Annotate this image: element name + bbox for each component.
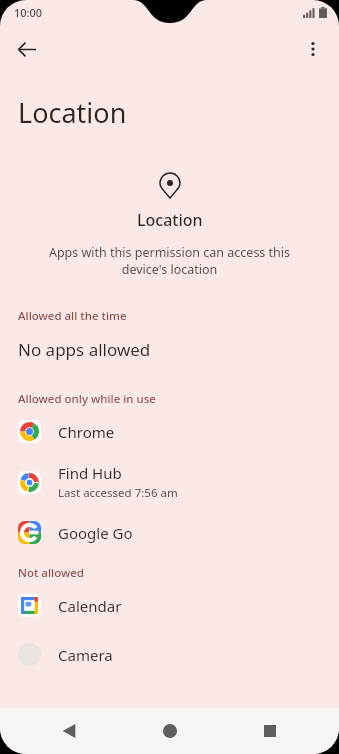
staticText: Calendar	[58, 596, 122, 616]
staticText: Location	[137, 209, 203, 231]
button[interactable]: Home	[153, 714, 187, 748]
button[interactable]: Back	[52, 714, 86, 748]
staticText: Location	[18, 94, 127, 131]
staticText: Find Hub	[58, 463, 122, 483]
staticText: Apps with this permission can access thi…	[26, 244, 313, 278]
staticText: Allowed all the time	[18, 308, 127, 324]
staticText: Google Go	[58, 523, 133, 543]
button[interactable]: Calendar	[0, 581, 339, 630]
button[interactable]: Recent apps	[253, 714, 287, 748]
button[interactable]: Back	[6, 29, 46, 69]
staticText: Camera	[58, 645, 113, 665]
button[interactable]: Google Go	[0, 508, 339, 557]
button[interactable]: Camera	[0, 630, 339, 679]
staticText: Last accessed 7:56 am	[58, 485, 178, 501]
staticText: Not allowed	[18, 565, 84, 581]
staticText: Chrome	[58, 422, 115, 442]
button[interactable]: Chrome	[0, 407, 339, 456]
staticText: No apps allowed	[18, 338, 151, 361]
staticText: Allowed only while in use	[18, 391, 156, 407]
button[interactable]: More options	[293, 29, 333, 69]
button[interactable]: Find Hub	[0, 456, 339, 508]
staticText: 10:00	[14, 5, 43, 20]
